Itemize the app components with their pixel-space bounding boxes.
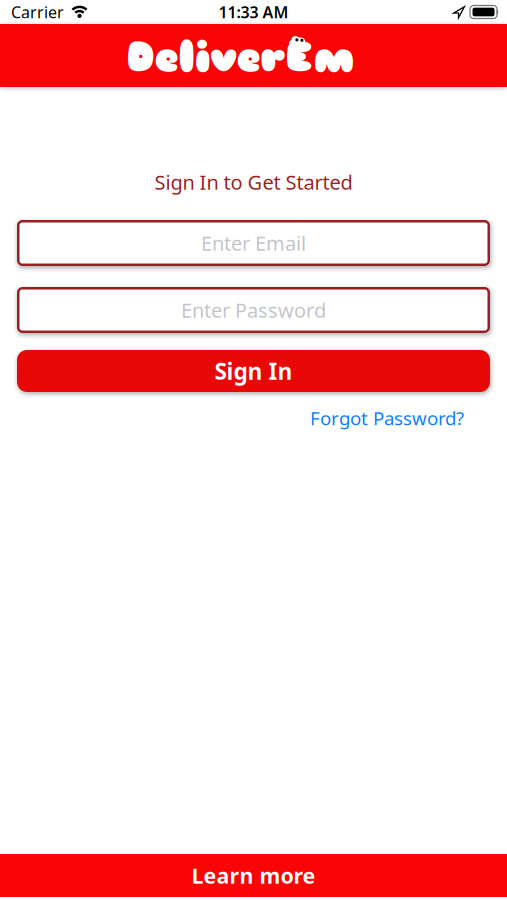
button[interactable]: Forgot Password?	[310, 409, 464, 427]
staticText: Enter Email	[201, 230, 306, 256]
staticText: Enter Password	[181, 297, 326, 323]
staticText: Learn more	[191, 861, 315, 890]
staticText: Deliver	[126, 32, 285, 83]
staticText: m	[313, 32, 354, 83]
button[interactable]: Learn more	[0, 854, 507, 897]
staticText: Carrier	[11, 1, 64, 23]
button[interactable]: Enter Password	[17, 287, 490, 333]
button[interactable]: Sign In	[17, 350, 490, 392]
staticText: 11:33 AM	[218, 1, 288, 23]
button[interactable]: Enter Email	[17, 220, 490, 266]
staticText: Forgot Password?	[310, 406, 464, 430]
staticText: E	[285, 32, 313, 83]
staticText: Sign In to Get Started	[154, 169, 352, 195]
staticText: Sign In	[214, 356, 292, 386]
